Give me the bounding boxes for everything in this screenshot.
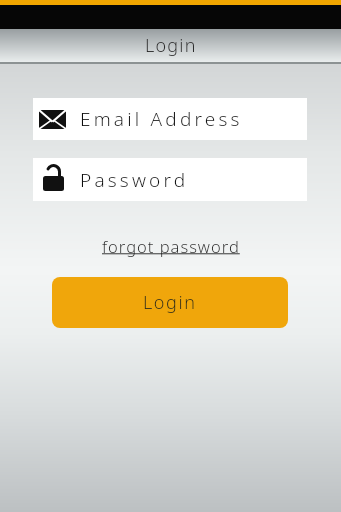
button[interactable]: Password <box>33 158 307 201</box>
button[interactable]: Email Address <box>33 98 307 140</box>
staticText: Email Address <box>80 106 243 132</box>
button[interactable]: forgot password <box>102 235 240 257</box>
staticText: Login <box>145 33 197 58</box>
button[interactable]: Login <box>52 277 288 328</box>
staticText: Password <box>80 167 189 193</box>
staticText: Login <box>143 290 197 315</box>
